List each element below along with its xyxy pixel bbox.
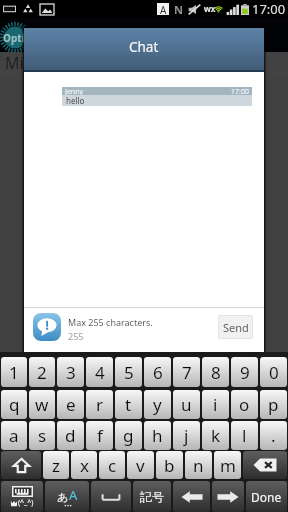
staticText: WX	[204, 5, 216, 15]
button[interactable]: j	[173, 421, 200, 450]
staticText: c	[108, 454, 117, 477]
button[interactable]: Switch keyboard	[1, 481, 43, 512]
button[interactable]: y	[144, 390, 171, 419]
staticText: .	[271, 424, 276, 447]
button[interactable]: Right	[212, 481, 244, 512]
staticText: 255	[68, 330, 84, 342]
staticText: 8	[211, 361, 221, 384]
staticText: q	[9, 393, 20, 416]
staticText: p	[268, 393, 279, 416]
staticText: d	[65, 424, 76, 447]
staticText: o	[239, 393, 250, 416]
staticText: あ	[57, 490, 69, 504]
staticText: Chat	[129, 38, 159, 56]
staticText: 17:00	[231, 87, 249, 95]
button[interactable]: 0	[260, 357, 287, 387]
staticText: h	[152, 424, 163, 447]
staticText: u	[181, 393, 192, 416]
staticText: 1	[9, 361, 19, 384]
button[interactable]: 1	[1, 357, 27, 387]
button[interactable]: r	[86, 390, 113, 419]
button[interactable]: o	[231, 390, 258, 419]
button[interactable]: f	[86, 421, 113, 450]
button[interactable]: Shift	[1, 451, 41, 479]
button[interactable]: c	[99, 451, 125, 479]
button[interactable]: z	[43, 451, 69, 479]
staticText: (^_^)	[18, 498, 34, 508]
button[interactable]: a	[1, 421, 27, 450]
staticText: 2	[37, 361, 47, 384]
staticText: Mik	[5, 52, 33, 74]
button[interactable]: Backspace	[243, 451, 287, 479]
staticText: b	[164, 454, 175, 477]
button[interactable]: l	[231, 421, 258, 450]
button[interactable]: Left	[173, 481, 210, 512]
staticText: r	[96, 393, 104, 416]
staticText: v	[136, 454, 145, 477]
button[interactable]: s	[29, 421, 55, 450]
button[interactable]: p	[260, 390, 287, 419]
button[interactable]: q	[1, 390, 27, 419]
button[interactable]: 9	[231, 357, 258, 387]
staticText: s	[38, 424, 47, 447]
staticText: Max 255 characters.	[68, 316, 153, 328]
button[interactable]: Done	[246, 481, 287, 512]
button[interactable]: 3	[57, 357, 84, 387]
button[interactable]: 5	[115, 357, 142, 387]
staticText: z	[52, 454, 60, 477]
staticText: Done	[251, 489, 282, 505]
staticText: x	[80, 454, 89, 477]
button[interactable]: 記号	[133, 481, 171, 512]
staticText: 6	[153, 361, 163, 384]
button[interactable]: d	[57, 421, 84, 450]
button[interactable]: v	[127, 451, 154, 479]
staticText: 17:00	[252, 0, 286, 18]
button[interactable]: 2	[29, 357, 55, 387]
staticText: 7	[182, 361, 192, 384]
button[interactable]: e	[57, 390, 84, 419]
staticText: t	[125, 393, 132, 416]
button[interactable]: .	[260, 421, 287, 450]
staticText: y	[153, 393, 162, 416]
button[interactable]: g	[115, 421, 142, 450]
button[interactable]: x	[71, 451, 97, 479]
button[interactable]: w	[29, 390, 55, 419]
button[interactable]: 6	[144, 357, 171, 387]
staticText: N	[174, 2, 183, 17]
staticText: 4	[95, 361, 105, 384]
staticText: f	[97, 424, 103, 447]
staticText: j	[184, 424, 189, 447]
staticText: 5	[124, 361, 134, 384]
button[interactable]: i	[202, 390, 229, 419]
staticText: 3	[66, 361, 76, 384]
button[interactable]: あ	[45, 481, 89, 512]
button[interactable]: k	[202, 421, 229, 450]
staticText: Jenny	[65, 87, 84, 95]
staticText: A	[69, 486, 78, 504]
staticText: n	[193, 454, 204, 477]
staticText: w	[35, 393, 49, 416]
button[interactable]: h	[144, 421, 171, 450]
staticText: 記号	[140, 489, 164, 504]
button[interactable]: 4	[86, 357, 113, 387]
button[interactable]: u	[173, 390, 200, 419]
staticText: k	[211, 424, 221, 447]
staticText: Send	[223, 320, 249, 335]
button[interactable]: Space	[91, 481, 131, 512]
staticText: i	[213, 393, 218, 416]
button[interactable]: n	[185, 451, 212, 479]
button[interactable]: t	[115, 390, 142, 419]
button[interactable]: 7	[173, 357, 200, 387]
staticText: 0	[269, 361, 279, 384]
button[interactable]: Send	[218, 315, 253, 339]
button[interactable]: b	[156, 451, 183, 479]
staticText: hello	[66, 95, 85, 106]
staticText: e	[66, 393, 76, 416]
staticText: 9	[240, 361, 250, 384]
button[interactable]: 8	[202, 357, 229, 387]
staticText: m	[220, 454, 236, 477]
staticText: Optia	[3, 31, 31, 45]
staticText: A	[160, 3, 167, 15]
button[interactable]: m	[214, 451, 241, 479]
staticText: a	[9, 424, 19, 447]
